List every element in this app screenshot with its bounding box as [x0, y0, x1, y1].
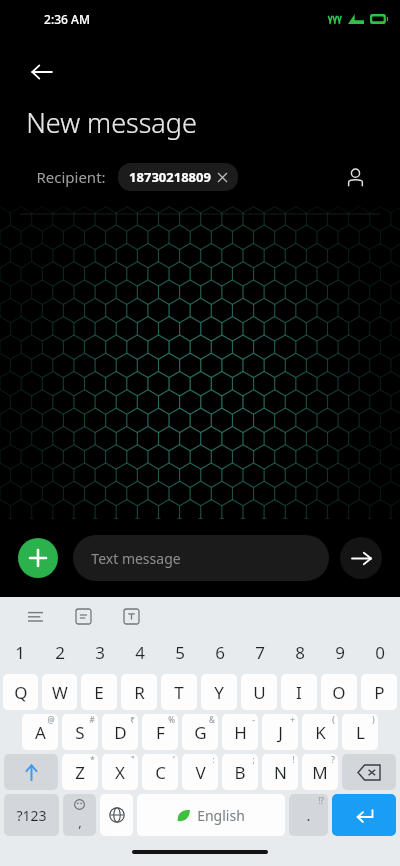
button[interactable]: L: [342, 714, 378, 750]
staticText: G: [194, 721, 207, 744]
button[interactable]: Change language: [100, 794, 133, 836]
staticText: S: [75, 721, 85, 744]
button[interactable]: O: [321, 674, 357, 710]
button[interactable]: 18730218809: [118, 163, 238, 191]
button[interactable]: Backspace: [342, 754, 396, 790]
staticText: &: [209, 714, 215, 725]
button[interactable]: Shift: [4, 754, 58, 790]
staticText: +: [290, 714, 295, 725]
button[interactable]: V: [182, 754, 218, 790]
staticText: English: [197, 806, 245, 825]
button[interactable]: Menu: [22, 603, 48, 629]
button[interactable]: ?123: [4, 794, 59, 836]
button[interactable]: W: [42, 674, 77, 710]
staticText: *: [90, 754, 95, 765]
staticText: ?123: [16, 806, 47, 825]
staticText: Recipient:: [36, 167, 106, 187]
button[interactable]: H: [222, 714, 258, 750]
button[interactable]: F: [142, 714, 178, 750]
button[interactable]: Text message: [73, 535, 329, 581]
button[interactable]: E: [81, 674, 117, 710]
staticText: 3: [95, 641, 105, 664]
staticText: 9: [335, 641, 345, 664]
button[interactable]: R: [121, 674, 157, 710]
staticText: D: [114, 721, 127, 744]
staticText: ₹: [130, 714, 135, 725]
staticText: ": [131, 754, 135, 765]
button[interactable]: Add attachment: [18, 538, 58, 578]
staticText: V: [195, 761, 206, 784]
button[interactable]: Send: [340, 537, 382, 579]
button[interactable]: U: [241, 674, 277, 710]
staticText: 6: [215, 641, 225, 664]
button[interactable]: P: [361, 674, 397, 710]
button[interactable]: N: [262, 754, 298, 790]
button[interactable]: A: [22, 714, 58, 750]
button[interactable]: J: [262, 714, 298, 750]
button[interactable]: 3: [80, 635, 120, 669]
button[interactable]: 9: [320, 635, 360, 669]
button[interactable]: Back: [24, 54, 60, 90]
button[interactable]: Text settings: [118, 603, 144, 629]
button[interactable]: 4: [120, 635, 160, 669]
button[interactable]: C: [142, 754, 178, 790]
staticText: Q: [14, 681, 28, 704]
button[interactable]: Emoji and comma: [63, 794, 96, 836]
staticText: !: [292, 754, 295, 765]
staticText: 8: [295, 641, 305, 664]
button[interactable]: M: [302, 754, 338, 790]
staticText: New message: [26, 104, 197, 141]
button[interactable]: Z: [62, 754, 98, 790]
button[interactable]: B: [222, 754, 258, 790]
staticText: F: [156, 721, 165, 744]
button[interactable]: 1: [0, 635, 40, 669]
staticText: U: [253, 681, 266, 704]
staticText: !?: [318, 795, 324, 806]
staticText: 0: [375, 641, 385, 664]
staticText: T: [174, 681, 184, 704]
button[interactable]: D: [102, 714, 138, 750]
staticText: .: [306, 805, 311, 825]
staticText: 18730218809: [129, 168, 211, 186]
button[interactable]: Q: [3, 674, 38, 710]
staticText: #: [89, 714, 95, 725]
button[interactable]: 7: [240, 635, 280, 669]
button[interactable]: Clipboard: [70, 603, 96, 629]
button[interactable]: K: [302, 714, 338, 750]
staticText: E: [94, 681, 104, 704]
staticText: M: [312, 761, 328, 784]
staticText: :: [212, 754, 215, 765]
button[interactable]: T: [161, 674, 197, 710]
button[interactable]: 6: [200, 635, 240, 669]
staticText: Text message: [91, 549, 181, 568]
button[interactable]: Period: [289, 794, 328, 836]
button[interactable]: 0: [360, 635, 400, 669]
staticText: 2: [55, 641, 65, 664]
button[interactable]: Contacts: [338, 160, 372, 194]
staticText: W: [52, 681, 68, 704]
button[interactable]: English: [137, 794, 285, 836]
staticText: X: [115, 761, 125, 784]
button[interactable]: X: [102, 754, 138, 790]
button[interactable]: G: [182, 714, 218, 750]
staticText: N: [274, 761, 287, 784]
staticText: @: [47, 714, 55, 725]
button[interactable]: I: [281, 674, 317, 710]
button[interactable]: 2: [40, 635, 80, 669]
button[interactable]: Enter: [332, 794, 396, 836]
staticText: 2:36 AM: [44, 11, 90, 27]
staticText: B: [234, 761, 246, 784]
button[interactable]: 8: [280, 635, 320, 669]
button[interactable]: S: [62, 714, 98, 750]
staticText: H: [234, 721, 247, 744]
staticText: 5: [175, 641, 185, 664]
staticText: K: [315, 721, 326, 744]
staticText: ): [372, 714, 375, 725]
staticText: J: [278, 721, 283, 744]
button[interactable]: 5: [160, 635, 200, 669]
staticText: %: [168, 714, 175, 725]
staticText: I: [296, 681, 302, 704]
staticText: -: [252, 714, 255, 725]
staticText: ;: [252, 754, 255, 765]
button[interactable]: Y: [201, 674, 237, 710]
